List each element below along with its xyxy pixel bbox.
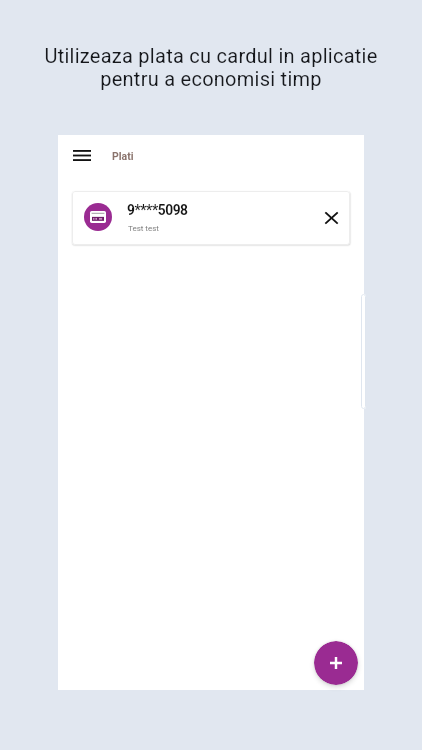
staticText: 9****5098 [127, 202, 188, 218]
staticText: Plati [112, 150, 134, 162]
button[interactable]: Open navigation menu [68, 141, 96, 169]
button[interactable]: Add payment card [314, 641, 358, 685]
staticText: Utilizeaza plata cu cardul in aplicatie … [0, 44, 422, 90]
button[interactable]: 9****5098 [72, 191, 350, 245]
button[interactable]: Remove card [320, 207, 342, 229]
staticText: Test test [128, 224, 159, 233]
